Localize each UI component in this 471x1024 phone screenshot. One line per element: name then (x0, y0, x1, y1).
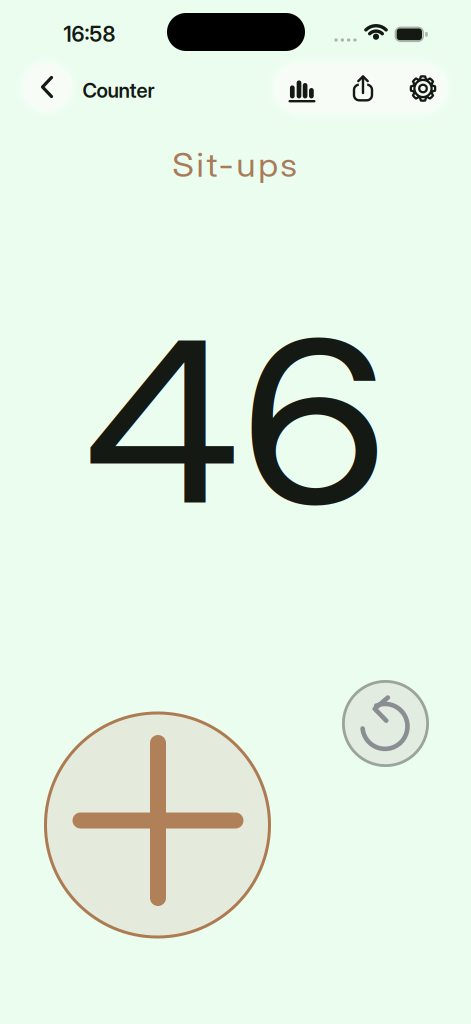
button[interactable]: Back (23, 63, 71, 111)
button[interactable]: Increment (44, 711, 271, 938)
button[interactable]: Share (335, 64, 390, 112)
staticText: 46 (102, 290, 370, 553)
staticText: Counter (82, 79, 154, 102)
staticText: Sit-ups (178, 146, 291, 184)
button[interactable]: Undo (342, 680, 429, 767)
button[interactable]: Statistics (274, 64, 329, 112)
button[interactable]: Settings (395, 64, 450, 112)
staticText: 16:58 (63, 21, 115, 47)
